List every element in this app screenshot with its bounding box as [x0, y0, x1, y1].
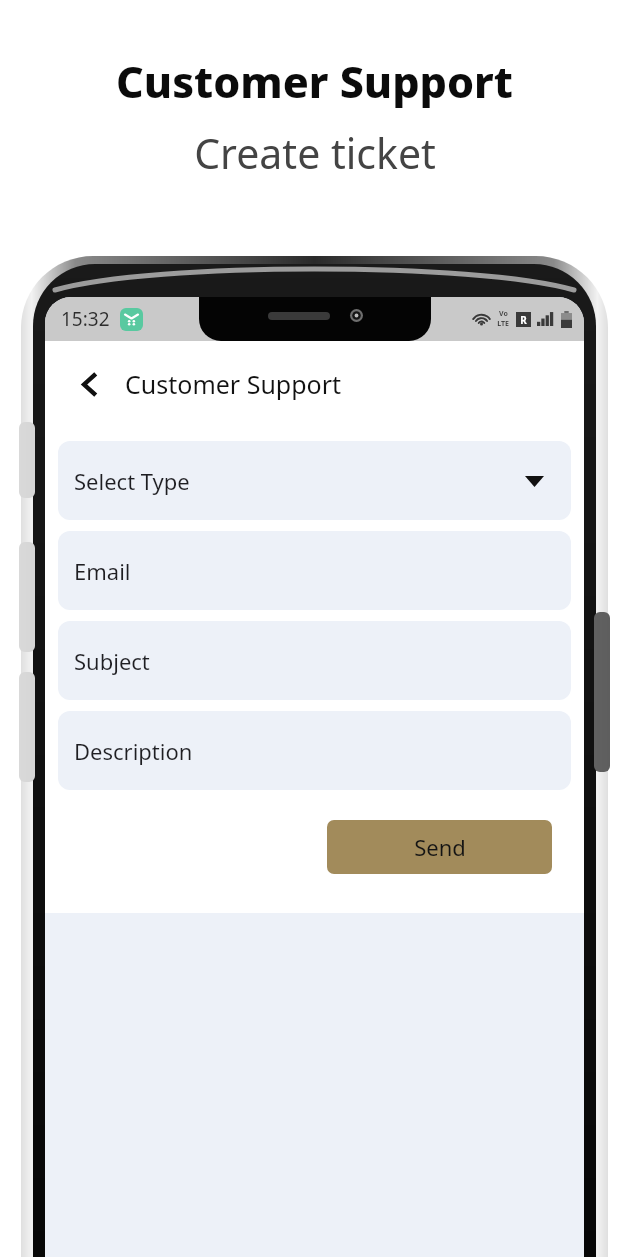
button[interactable]: Back — [67, 362, 111, 406]
staticText: Select Type — [74, 466, 190, 496]
staticText: Vo — [499, 309, 508, 319]
staticText: R — [520, 313, 527, 327]
staticText: Customer Support — [125, 367, 342, 401]
staticText: Send — [414, 832, 466, 862]
staticText: Create ticket — [194, 125, 436, 181]
staticText: Description — [74, 736, 193, 766]
button[interactable]: Send — [327, 820, 552, 874]
staticText: Customer Support — [116, 52, 513, 111]
button[interactable]: Description — [58, 711, 571, 790]
staticText: Email — [74, 556, 131, 586]
staticText: LTE — [497, 319, 509, 329]
button[interactable]: Subject — [58, 621, 571, 700]
staticText: 15:32 — [61, 306, 110, 332]
staticText: Subject — [74, 646, 150, 676]
button[interactable]: Email — [58, 531, 571, 610]
button[interactable]: Select Type — [58, 441, 571, 520]
